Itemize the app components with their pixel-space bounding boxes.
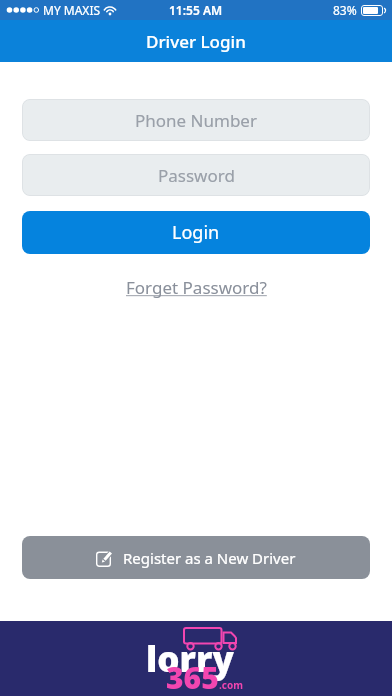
staticText: lorry [146,635,234,683]
button[interactable]: Password [22,154,370,196]
button[interactable]: Register as a New Driver [22,536,370,579]
button[interactable]: Phone Number [22,99,370,141]
staticText: 83% [333,2,357,18]
staticText: Phone Number [135,109,257,132]
button[interactable]: Login [22,211,370,254]
staticText: 365 [166,657,219,696]
staticText: Password [158,164,235,187]
staticText: .com [219,678,243,692]
staticText: MY MAXIS [43,2,101,18]
staticText: Register as a New Driver [123,548,296,568]
staticText: 11:55 AM [169,2,223,18]
staticText: Driver Login [146,30,246,53]
button[interactable]: Forget Password? [126,276,267,299]
staticText: Login [172,220,220,245]
